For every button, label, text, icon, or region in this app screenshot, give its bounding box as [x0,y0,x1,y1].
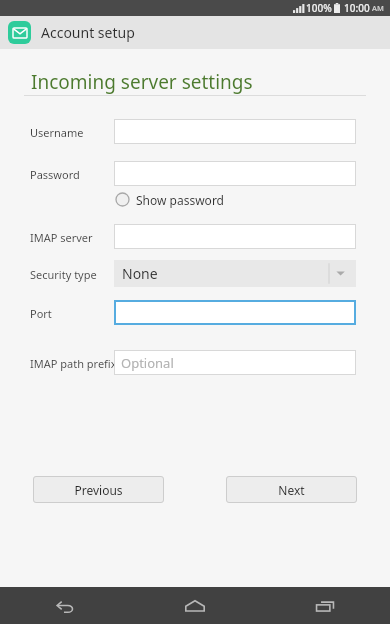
staticText: Account setup [41,23,135,42]
staticText: 10:00 [344,1,370,15]
staticText: Username [30,125,84,140]
button[interactable]: Home [130,587,260,624]
button[interactable] [114,161,356,186]
staticText: Security type [30,267,97,282]
staticText: Show password [136,192,224,208]
staticText: 100% [306,1,332,15]
staticText: Previous [74,482,123,498]
button[interactable]: Email app icon [8,21,31,44]
staticText: Optional [121,354,174,372]
button[interactable] [114,300,356,325]
staticText: AM [372,3,384,13]
button[interactable]: Previous [33,476,164,503]
staticText: Next [278,482,305,498]
button[interactable]: Optional [114,350,356,375]
button[interactable]: Show password [115,190,224,209]
button[interactable]: Recent apps [260,587,390,624]
staticText: None [122,264,158,283]
button[interactable] [114,224,356,249]
staticText: Incoming server settings [31,69,253,95]
button[interactable] [114,119,356,144]
button[interactable]: Back [0,587,130,624]
staticText: IMAP path prefix [30,356,117,371]
staticText: Password [30,167,80,182]
staticText: Port [30,306,52,321]
button[interactable]: Next [226,476,357,503]
staticText: IMAP server [30,230,93,245]
button[interactable]: None [114,260,356,287]
